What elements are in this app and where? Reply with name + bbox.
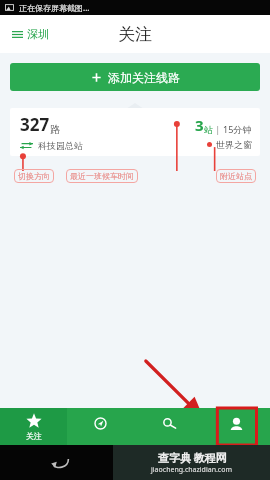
staticText: 15分钟 — [223, 123, 252, 135]
staticText: 关注 — [26, 431, 42, 441]
button[interactable]: Menu — [9, 24, 52, 44]
staticText: 添加关注线路 — [108, 70, 180, 85]
button[interactable]: 327 — [10, 108, 260, 156]
staticText: 327 — [20, 113, 50, 136]
staticText: 查字典 教程网 — [158, 450, 227, 465]
staticText: | — [213, 123, 223, 135]
button[interactable]: Profile — [202, 408, 270, 445]
staticText: 世界之窗 — [216, 139, 252, 150]
staticText: 最近一班候车时间 — [70, 171, 134, 181]
staticText: 附近站点 — [220, 171, 252, 181]
other: Back — [50, 453, 70, 473]
staticText: 站 — [204, 124, 213, 135]
staticText: 路 — [50, 123, 60, 136]
staticText: 3 — [195, 115, 204, 135]
staticText: 正在保存屏幕截图... — [19, 2, 90, 13]
button[interactable]: Search — [134, 408, 202, 445]
button[interactable]: 添加关注线路 — [10, 63, 260, 91]
staticText: 深圳 — [27, 27, 49, 41]
other: Menu — [12, 29, 23, 40]
staticText: 科技园总站 — [38, 140, 83, 151]
staticText: 切换方向 — [18, 171, 50, 181]
staticText: 关注 — [118, 24, 152, 45]
staticText: jiaocheng.chazidian.com — [151, 465, 233, 475]
button[interactable]: Nearby — [67, 408, 134, 445]
button[interactable]: 关注 — [0, 408, 67, 445]
